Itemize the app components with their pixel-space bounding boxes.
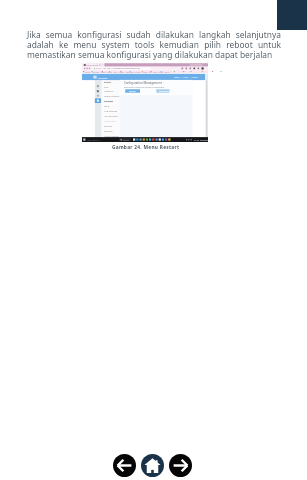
- staticText: Wireless: [104, 100, 114, 103]
- button[interactable]: Previous page: [113, 454, 136, 477]
- staticText: USB Settings: [104, 110, 118, 113]
- staticText: WPS: [104, 86, 109, 89]
- staticText: Backup and restore the current configura…: [124, 86, 165, 89]
- staticText: Search: [123, 139, 129, 142]
- staticText: 192.168.1.1/userRpm/SysRebootRpm.htm: [103, 67, 141, 70]
- staticText: Jika semua konfigurasi sudah dilakukan l…: [27, 29, 281, 60]
- staticText: NAT Boosting: [104, 115, 118, 118]
- staticText: Status: [104, 81, 111, 84]
- staticText: https://: [96, 67, 103, 70]
- staticText: DHCP: [104, 105, 110, 108]
- staticText: Security: [104, 125, 113, 128]
- staticText: Access Control: [104, 135, 119, 138]
- staticText: 11:16: [194, 139, 199, 142]
- staticText: Choose File: [159, 90, 170, 93]
- staticText: Backup: [129, 90, 136, 93]
- staticText: Configuration Management: [124, 81, 162, 85]
- staticText: Forwarding: [104, 120, 116, 123]
- staticText: Status | Help | Logout: [174, 76, 198, 79]
- staticText: Menu Restart: [87, 139, 100, 142]
- staticText: Gmail YouTube Maps Drive Docs News Trans…: [85, 71, 170, 74]
- staticText: Menu Restart: [86, 64, 98, 67]
- staticText: Guest Network: [104, 95, 120, 98]
- button[interactable]: Next page: [169, 454, 192, 477]
- button[interactable]: Home: [141, 454, 164, 477]
- staticText: TP-LINK: [98, 76, 108, 79]
- staticText: Network: [104, 90, 113, 93]
- staticText: 9/7/2022: [200, 139, 208, 142]
- staticText: Parental: [104, 130, 113, 133]
- staticText: Gambar 24. Menu Restart: [112, 144, 180, 151]
